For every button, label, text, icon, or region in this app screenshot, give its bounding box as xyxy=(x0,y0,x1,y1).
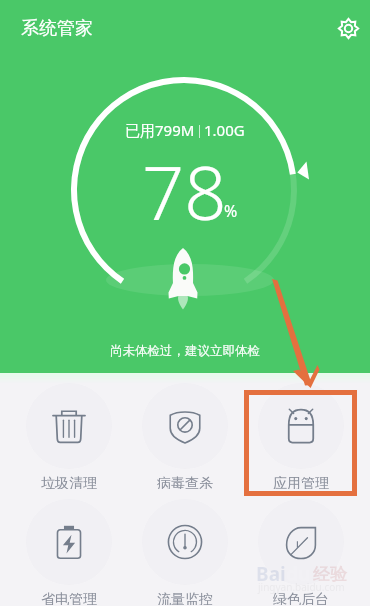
staticText: 流量监控 xyxy=(157,591,213,605)
button[interactable]: 流量监控 xyxy=(127,489,243,605)
staticText: 应用管理 xyxy=(273,475,329,489)
staticText: 省电管理 xyxy=(41,591,97,605)
staticText: 绿色后台 xyxy=(273,591,329,605)
staticText: 1.00G xyxy=(204,120,245,140)
staticText: 已用799M xyxy=(125,120,195,140)
staticText: % xyxy=(224,200,238,222)
button[interactable]: 应用管理 xyxy=(243,373,359,489)
staticText: 垃圾清理 xyxy=(41,475,97,489)
button[interactable]: 病毒查杀 xyxy=(127,373,243,489)
staticText: 尚未体检过，建议立即体检 xyxy=(0,343,370,359)
staticText: 系统管家 xyxy=(21,17,93,40)
button[interactable]: 垃圾清理 xyxy=(11,373,127,489)
staticText: 病毒查杀 xyxy=(157,475,213,489)
staticText: Bai xyxy=(256,561,286,587)
staticText: 经验 xyxy=(313,564,347,585)
staticText: 78 xyxy=(142,141,227,242)
button[interactable]: 绿色后台 xyxy=(243,489,359,605)
button[interactable]: 省电管理 xyxy=(11,489,127,605)
button[interactable]: Settings xyxy=(332,12,364,44)
staticText: jingyan.baidu.com xyxy=(258,580,345,594)
